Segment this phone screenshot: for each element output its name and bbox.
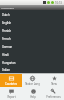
staticText: Report: [7, 95, 16, 99]
button[interactable]: Hungarian: [0, 59, 64, 67]
staticText: Languages: [1, 6, 14, 9]
button[interactable]: Report: [0, 87, 22, 100]
staticText: New: [51, 82, 57, 86]
staticText: 10:13: [55, 1, 62, 5]
staticText: Dutch: [2, 13, 10, 17]
button[interactable]: Finnish: [0, 27, 64, 35]
staticText: Countries: [5, 82, 17, 86]
button[interactable]: English: [0, 19, 64, 27]
staticText: Help: [30, 95, 36, 99]
button[interactable]: Native Lang: [22, 74, 43, 87]
button[interactable]: Dutch: [0, 11, 64, 19]
button[interactable]: French: [0, 35, 64, 43]
staticText: Native Lang: [25, 82, 40, 86]
button[interactable]: Italian: [0, 67, 64, 73]
button[interactable]: New: [43, 74, 64, 87]
button[interactable]: Preferences: [43, 87, 64, 100]
button[interactable]: Countries: [0, 74, 22, 87]
staticText: French: [2, 37, 11, 41]
staticText: Hungarian: [2, 61, 16, 65]
staticText: Preferences: [46, 95, 61, 99]
button[interactable]: Languages: [0, 5, 64, 10]
button[interactable]: Help: [22, 87, 43, 100]
button[interactable]: Hindi: [0, 51, 64, 59]
button[interactable]: German: [0, 43, 64, 51]
staticText: English: [2, 21, 12, 25]
staticText: Italian: [2, 68, 10, 72]
staticText: German: [2, 45, 13, 49]
staticText: Finnish: [2, 29, 12, 33]
staticText: Hindi: [2, 53, 9, 57]
